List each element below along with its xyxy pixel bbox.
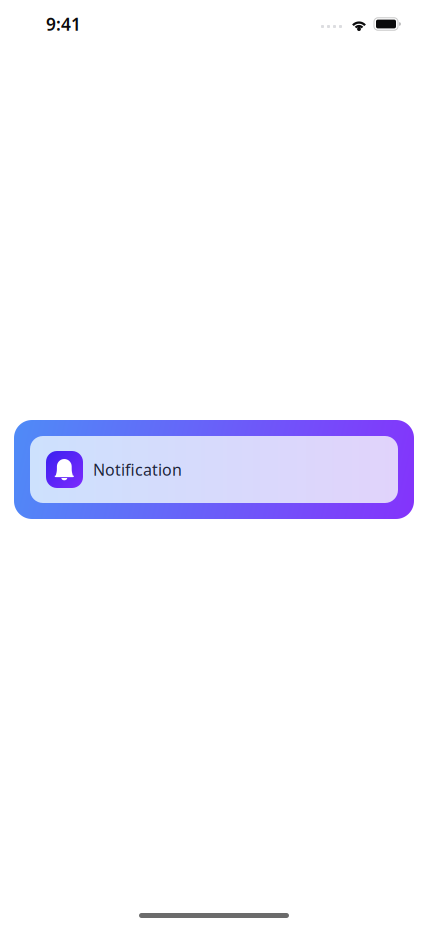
- button[interactable]: Notification: [14, 420, 414, 519]
- staticText: Notification: [93, 459, 182, 480]
- staticText: 9:41: [46, 12, 81, 35]
